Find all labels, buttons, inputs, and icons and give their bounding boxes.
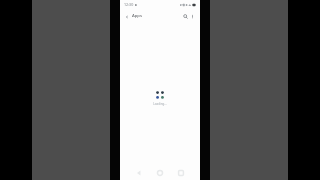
staticText: Loading... [153,102,167,106]
button[interactable]: Back [132,166,146,180]
button[interactable]: Navigate up [122,12,131,21]
button[interactable]: Home [153,166,167,180]
staticText: Apps [132,13,142,19]
button[interactable]: More options [189,13,195,19]
button[interactable]: Recents [174,166,188,180]
staticText: 12:30 [124,2,134,7]
button[interactable]: Search [182,13,189,20]
